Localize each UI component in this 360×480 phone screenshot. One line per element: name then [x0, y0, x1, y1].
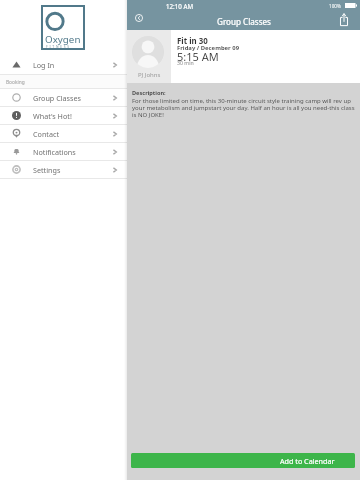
staticText: Notifications [33, 147, 76, 157]
staticText: 100% [329, 3, 341, 9]
button[interactable]: Notifications [0, 143, 127, 160]
staticText: F I T N E S S [46, 44, 70, 48]
staticText: Group Classes [217, 16, 271, 27]
staticText: Group Classes [33, 93, 81, 103]
staticText: Oxygen [45, 33, 81, 46]
staticText: What's Hot! [33, 111, 72, 121]
button[interactable]: Settings [0, 161, 127, 178]
staticText: Log In [33, 60, 55, 70]
staticText: 12:10 AM [166, 2, 193, 10]
staticText: Fit in 30 [177, 36, 208, 47]
staticText: Settings [33, 165, 61, 175]
button[interactable]: Share [337, 10, 351, 28]
staticText: 30 min [177, 59, 194, 66]
staticText: Friday / December 09 [177, 44, 240, 52]
staticText: Add to Calendar [280, 456, 335, 466]
button[interactable]: What's Hot! [0, 107, 127, 124]
button[interactable]: Group Classes [0, 89, 127, 106]
staticText: 5:15 AM [177, 49, 219, 64]
staticText: Description: [132, 89, 166, 97]
staticText: For those limited on time, this 30-minut… [132, 97, 356, 119]
staticText: Booking [6, 79, 25, 86]
button[interactable]: Back [133, 12, 145, 24]
button[interactable]: Log In [0, 55, 127, 74]
staticText: PJ Johns [138, 71, 161, 79]
staticText: Contact [33, 129, 60, 139]
button[interactable]: Add to Calendar [131, 453, 355, 468]
button[interactable]: Contact [0, 125, 127, 142]
